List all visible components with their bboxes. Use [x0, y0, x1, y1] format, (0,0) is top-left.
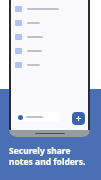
button[interactable]: [11, 30, 88, 44]
button[interactable]: [11, 2, 88, 16]
button[interactable]: [11, 16, 88, 30]
button[interactable]: [11, 58, 88, 72]
button[interactable]: Add: [72, 112, 85, 125]
button[interactable]: Search: [15, 112, 61, 122]
button[interactable]: [11, 44, 88, 58]
staticText: Securely share notes and folders.: [9, 145, 89, 167]
